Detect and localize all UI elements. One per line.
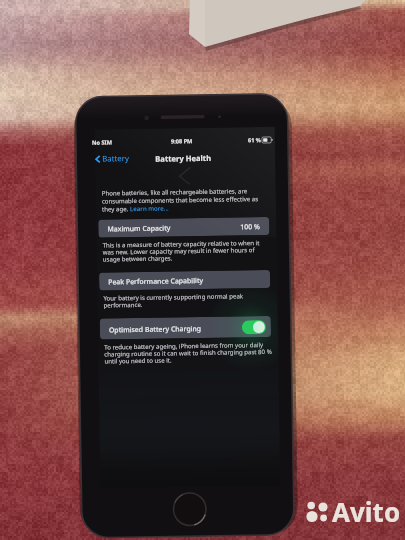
- button[interactable]: Maximum Capacity: [98, 217, 269, 238]
- staticText: they age.: [102, 204, 130, 212]
- button[interactable]: Optimised Battery Charging toggle: [242, 320, 266, 334]
- staticText: Avito: [332, 494, 401, 529]
- button[interactable]: Battery: [95, 151, 133, 167]
- staticText: No SIM: [92, 138, 113, 147]
- staticText: Maximum Capacity: [107, 223, 171, 233]
- staticText: Your battery is currently supporting nor…: [103, 291, 264, 309]
- staticText: Learn more...: [130, 203, 169, 212]
- staticText: 9:08 PM: [171, 137, 193, 145]
- staticText: Peak Performance Capability: [108, 276, 203, 286]
- staticText: Battery: [102, 153, 129, 164]
- staticText: Optimised Battery Charging: [109, 324, 202, 334]
- button[interactable]: Optimised Battery Charging: [100, 316, 271, 340]
- staticText: Battery Health: [155, 153, 211, 164]
- button[interactable]: Peak Performance Capability: [99, 270, 270, 291]
- staticText: 61 %: [248, 136, 261, 144]
- staticText: This is a measure of battery capacity re…: [102, 238, 269, 264]
- button[interactable]: Learn more...: [130, 203, 169, 212]
- staticText: Phone batteries, like all rechargeable b…: [102, 186, 248, 197]
- staticText: consumable components that become less e…: [102, 194, 259, 205]
- staticText: To reduce battery ageing, iPhone learns …: [104, 340, 274, 366]
- staticText: 100 %: [240, 222, 260, 231]
